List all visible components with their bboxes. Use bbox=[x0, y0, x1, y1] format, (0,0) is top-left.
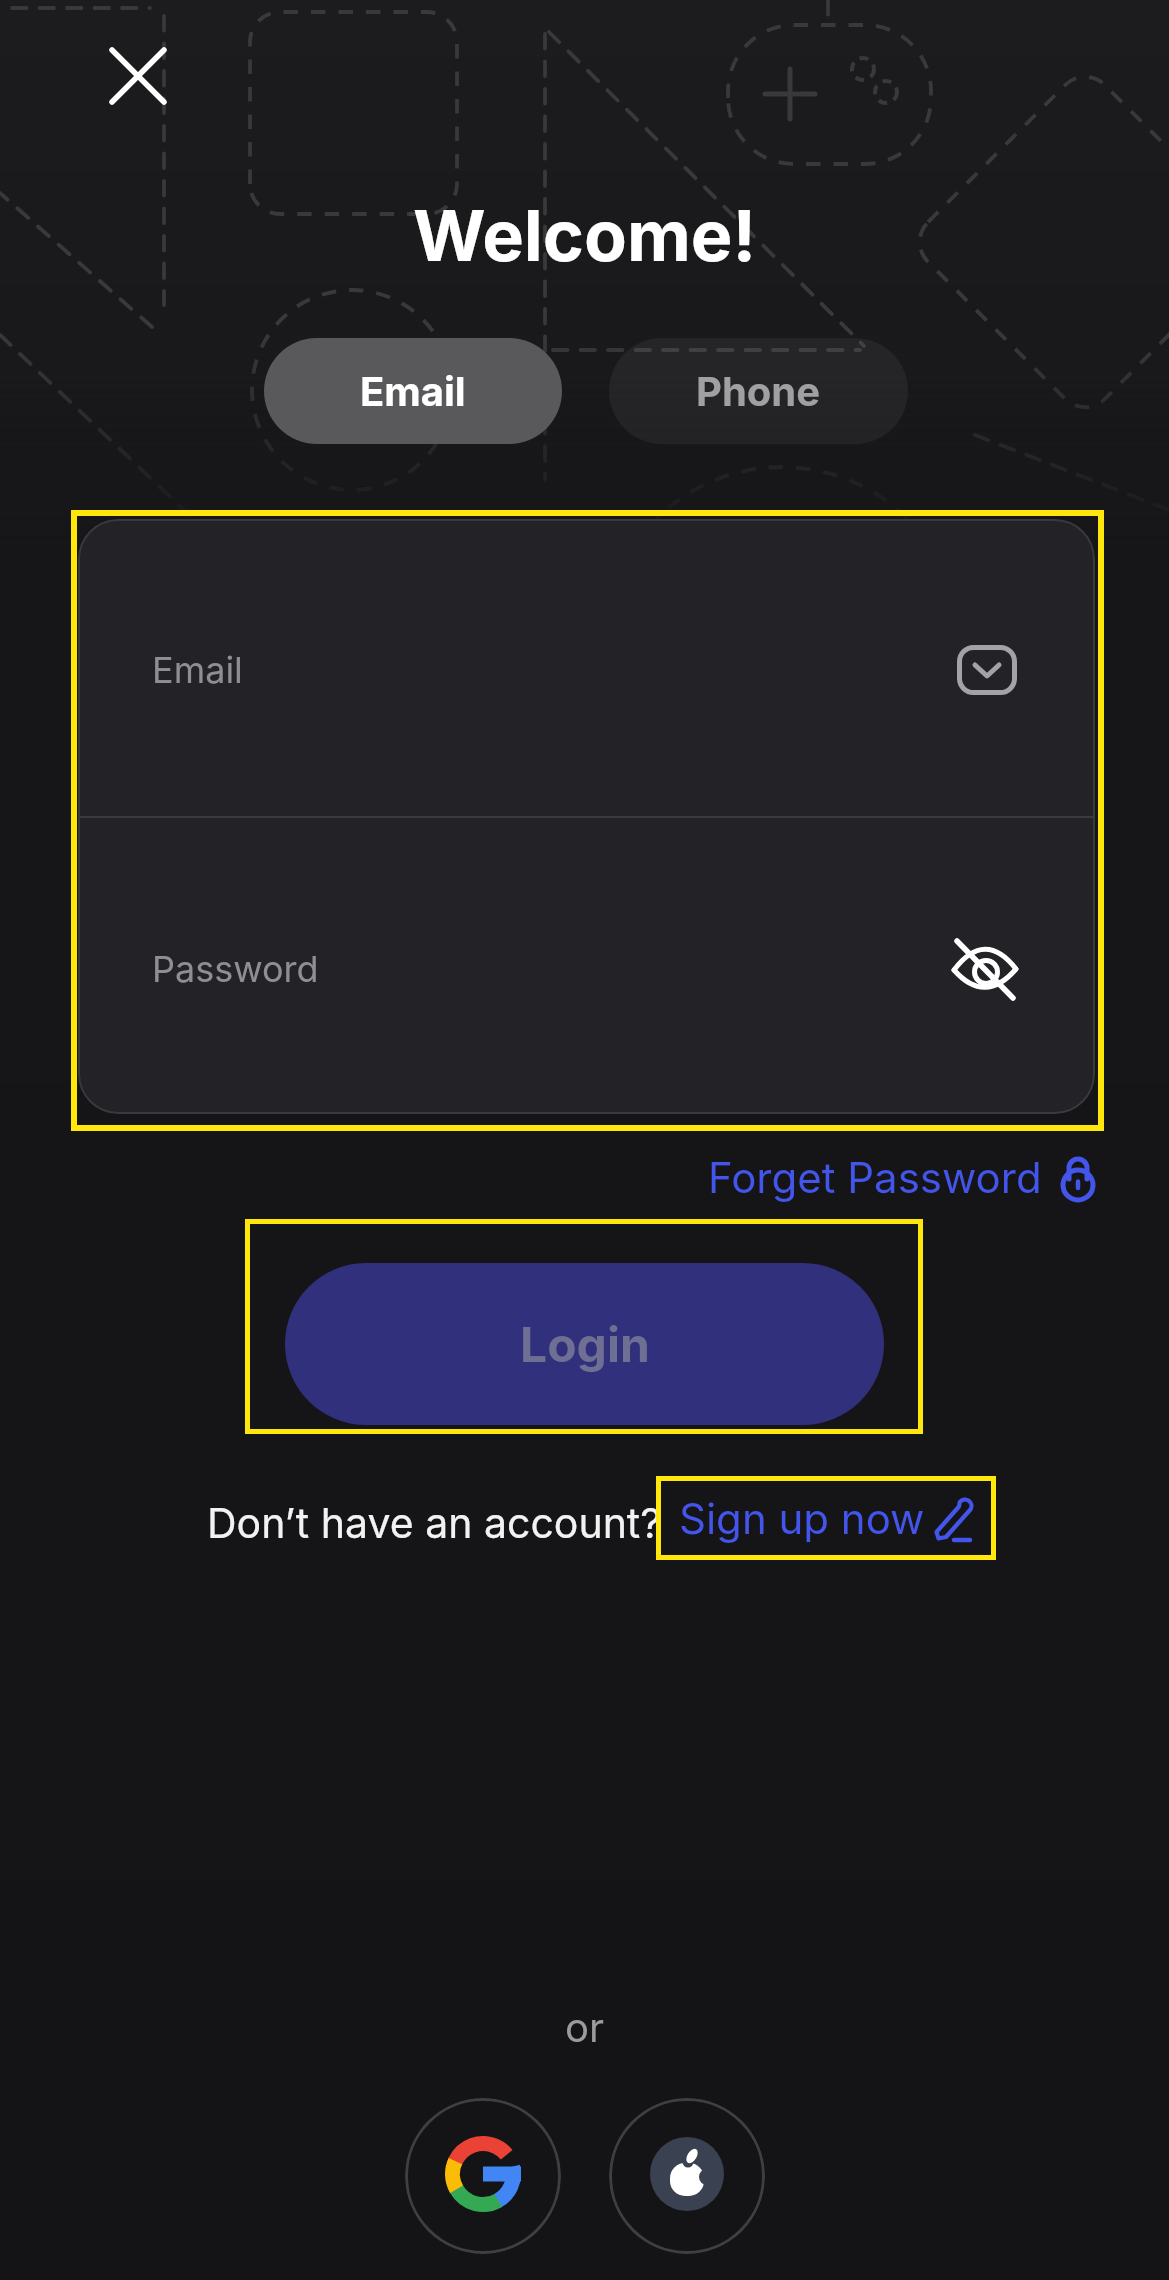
button[interactable] bbox=[609, 2098, 765, 2254]
button[interactable]: Login bbox=[285, 1263, 884, 1425]
staticText: Welcome! bbox=[413, 193, 757, 278]
staticText: Sign up now bbox=[679, 1493, 925, 1544]
staticText: Email bbox=[360, 367, 466, 415]
staticText: Email bbox=[152, 648, 243, 692]
button[interactable]: Forget Password bbox=[708, 1144, 1092, 1210]
staticText: or bbox=[565, 2003, 605, 2051]
staticText: Password bbox=[152, 947, 319, 991]
button[interactable]: Sign up now bbox=[656, 1476, 996, 1560]
button[interactable] bbox=[98, 36, 178, 116]
button[interactable] bbox=[78, 521, 1095, 815]
button[interactable] bbox=[78, 818, 1095, 1112]
staticText: Phone bbox=[696, 367, 821, 415]
staticText: Don’t have an account? bbox=[207, 1498, 662, 1548]
staticText: Login bbox=[520, 1315, 650, 1373]
staticText: Forget Password bbox=[708, 1152, 1042, 1203]
button[interactable]: Phone bbox=[609, 338, 908, 444]
button[interactable] bbox=[405, 2098, 561, 2254]
button[interactable]: Email bbox=[264, 338, 562, 444]
